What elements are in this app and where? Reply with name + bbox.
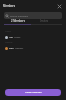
staticText: Admin <box>14 36 21 39</box>
staticText: Member <box>15 47 24 50</box>
button[interactable]: 2 Members <box>4 19 31 23</box>
staticText: Invites <box>40 19 49 23</box>
staticText: Sam <box>9 47 14 50</box>
button[interactable]: Invites <box>31 19 58 23</box>
staticText: Search members <box>10 15 29 18</box>
staticText: Members <box>3 4 15 8</box>
staticText: 2 Members <box>11 19 25 23</box>
staticText: Member <box>5 41 13 44</box>
button[interactable]: Close <box>56 3 63 10</box>
button[interactable]: You <box>0 34 66 40</box>
button[interactable]: Search members <box>4 12 62 19</box>
staticText: Invite member <box>25 91 42 94</box>
staticText: Admin <box>5 30 11 33</box>
staticText: You <box>9 36 13 39</box>
button[interactable]: Sam <box>0 45 66 51</box>
button[interactable]: Invite member <box>5 89 61 96</box>
